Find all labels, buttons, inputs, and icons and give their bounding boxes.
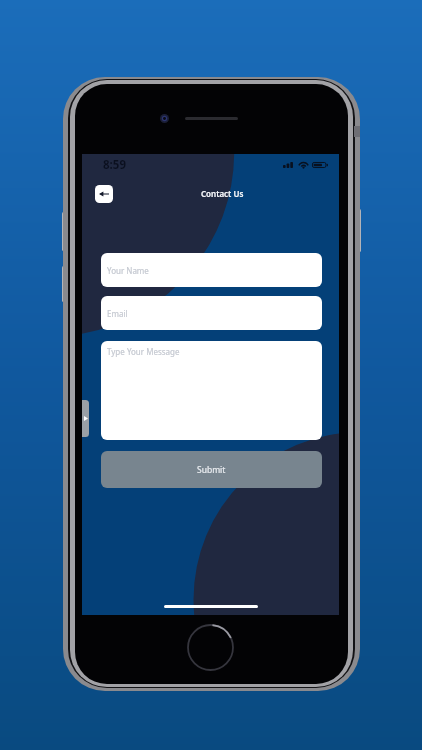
button[interactable]: Your Name [101, 253, 322, 287]
staticText: Type Your Message [107, 346, 180, 357]
button[interactable]: Back [95, 185, 113, 203]
staticText: Submit [197, 464, 226, 476]
staticText: Your Name [107, 265, 149, 276]
button[interactable]: Open navigation drawer [82, 400, 89, 437]
staticText: 8:59 [103, 157, 126, 173]
staticText: Contact Us [201, 188, 244, 199]
button[interactable]: Email [101, 296, 322, 330]
button[interactable]: Type Your Message [101, 341, 322, 440]
staticText: Email [107, 308, 128, 319]
button[interactable]: Submit [101, 451, 322, 488]
